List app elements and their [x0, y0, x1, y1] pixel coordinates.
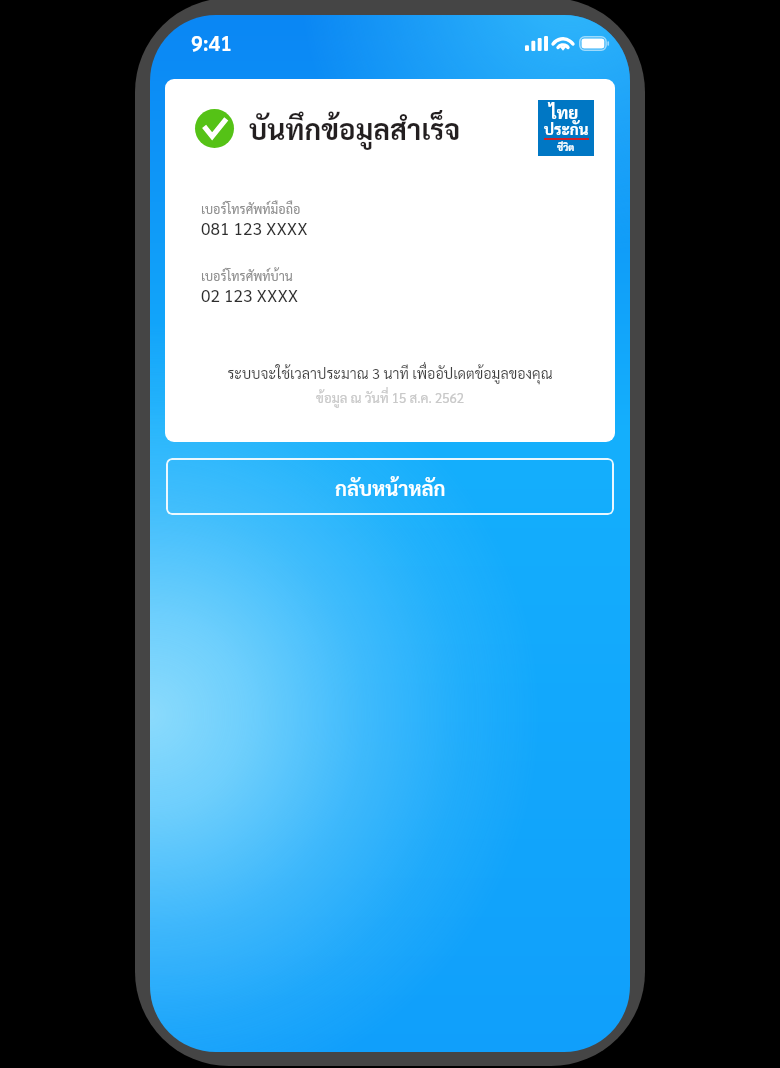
staticText: บันทึกข้อมูลสำเร็จ	[249, 110, 461, 146]
staticText: ไทย	[549, 101, 579, 123]
button[interactable]: กลับหน้าหลัก	[166, 458, 614, 515]
staticText: 02 123 XXXX	[201, 284, 299, 306]
staticText: เบอร์โทรศัพท์มือถือ	[201, 201, 301, 217]
staticText: 081 123 XXXX	[201, 217, 308, 239]
staticText: ระบบจะใช้เวลาประมาณ 3 นาที เพื่ออัปเดตข้…	[165, 364, 615, 383]
staticText: 9:41	[191, 29, 233, 56]
staticText: ชีวิต	[557, 141, 575, 153]
staticText: ประกัน	[544, 119, 589, 138]
staticText: เบอร์โทรศัพท์บ้าน	[201, 268, 293, 284]
staticText: ข้อมูล ณ วันที่ 15 ส.ค. 2562	[165, 389, 615, 406]
staticText: กลับหน้าหลัก	[335, 474, 446, 500]
